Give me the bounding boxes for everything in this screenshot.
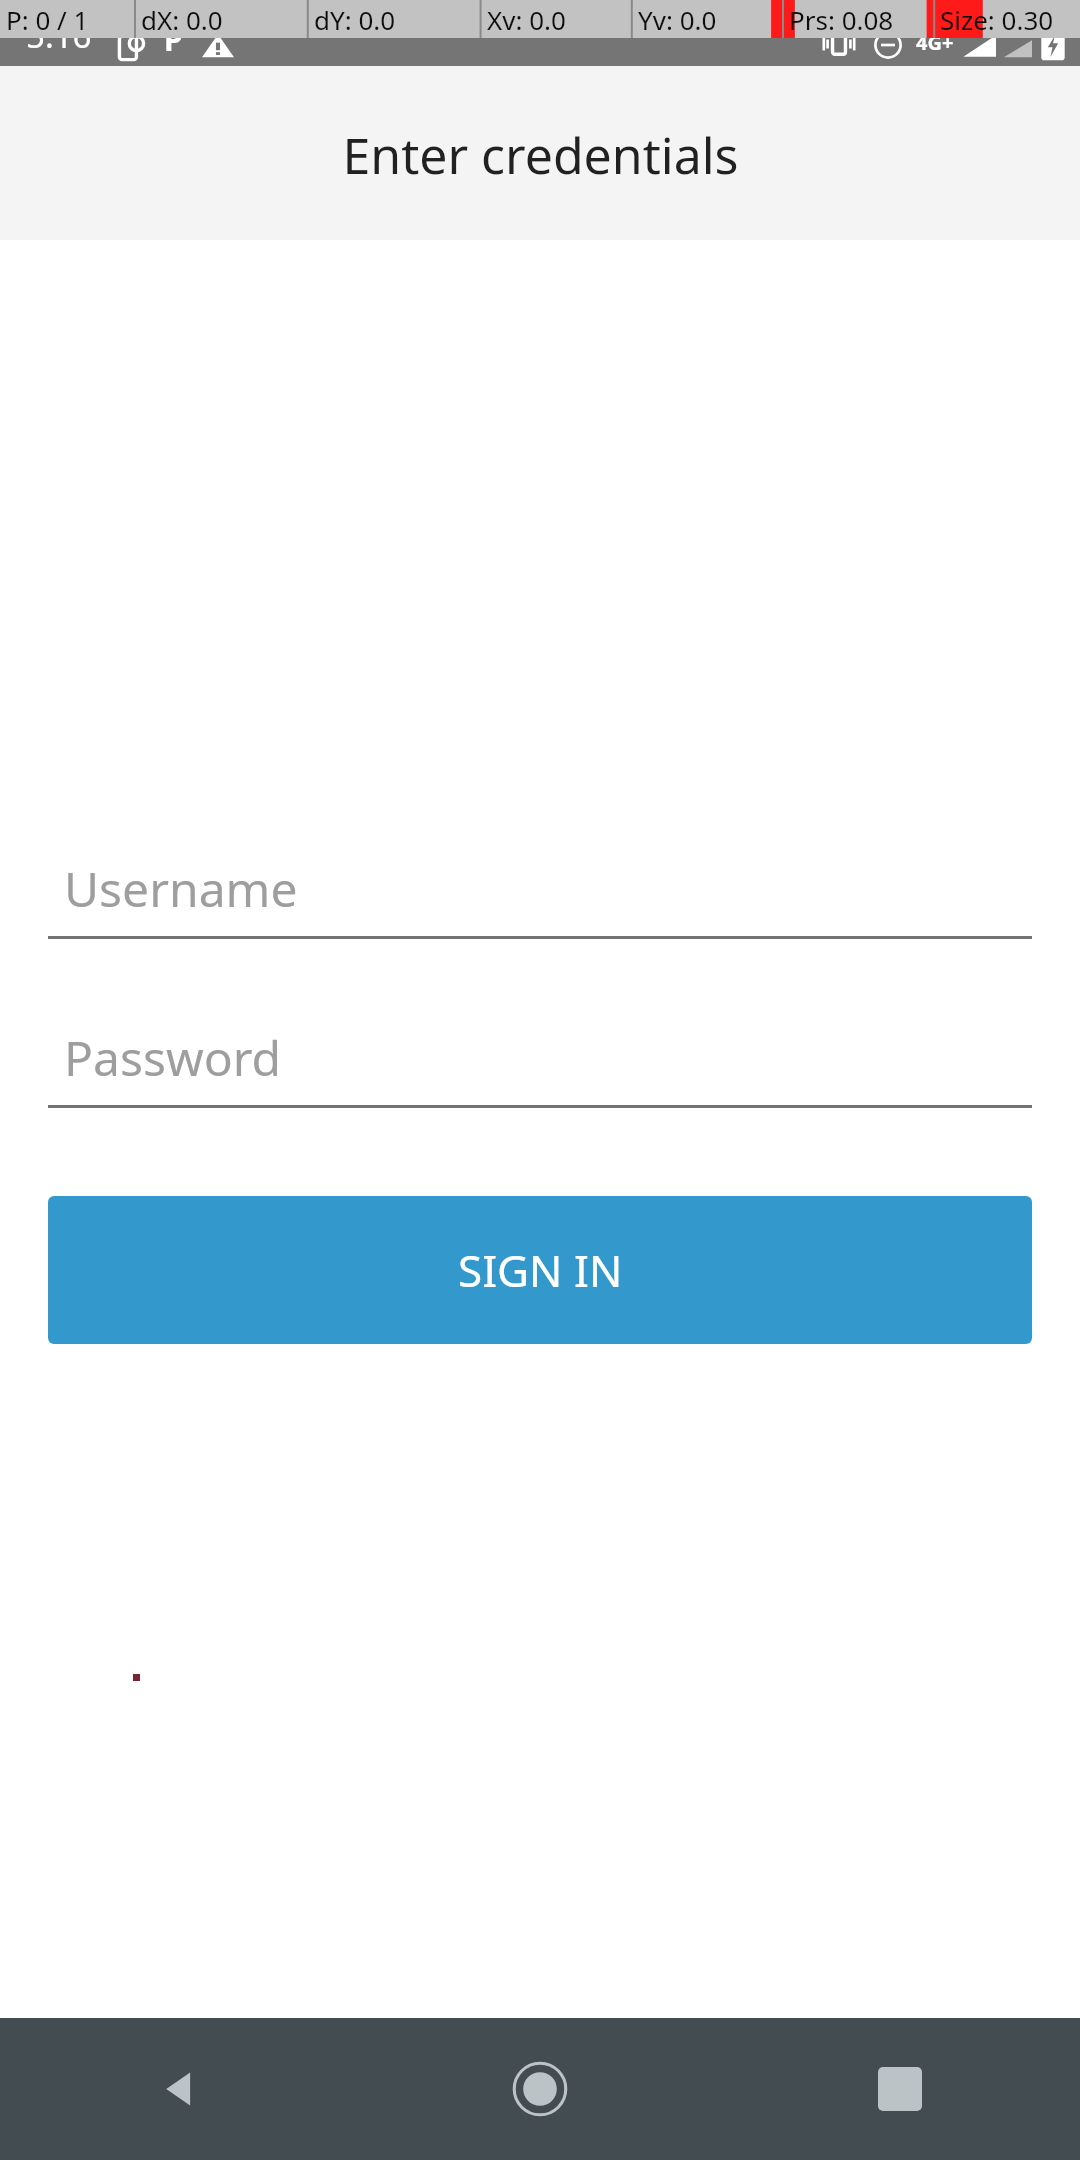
staticText: 4G+ <box>916 29 954 56</box>
button[interactable]: Password <box>48 1009 1032 1108</box>
staticText: SIGN IN <box>458 1240 623 1300</box>
button[interactable]: Home <box>360 2018 720 2160</box>
staticText: Prs: 0.08 <box>789 2 894 37</box>
staticText: Yv: 0.0 <box>638 2 717 37</box>
staticText: Password <box>64 1025 282 1090</box>
button[interactable]: SIGN IN <box>48 1196 1032 1344</box>
staticText: P: 0 / 1 <box>6 2 89 37</box>
staticText: Xv: 0.0 <box>487 2 566 37</box>
staticText: 5:16 <box>26 13 92 58</box>
staticText: Size: 0.30 <box>940 2 1054 37</box>
staticText: Username <box>64 856 298 921</box>
button[interactable]: Back <box>0 2018 360 2160</box>
button[interactable]: Username <box>48 840 1032 939</box>
staticText: dY: 0.0 <box>314 2 396 37</box>
button[interactable]: Recent apps <box>720 2018 1080 2160</box>
staticText: Enter credentials <box>342 121 739 189</box>
staticText: P <box>164 19 183 60</box>
staticText: dX: 0.0 <box>141 2 223 37</box>
